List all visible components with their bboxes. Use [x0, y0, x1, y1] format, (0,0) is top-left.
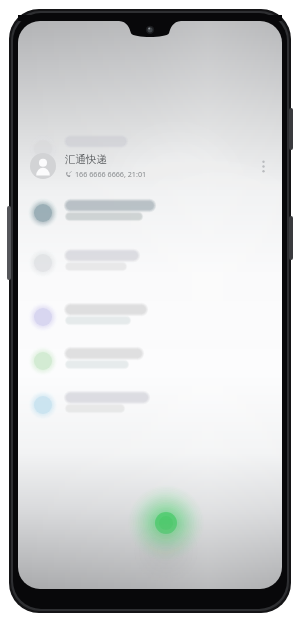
- button[interactable]: Dial pad: [128, 485, 204, 561]
- button[interactable]: [18, 293, 282, 337]
- staticText: 166 6666 6666, 21:01: [75, 169, 147, 179]
- staticText: 汇通快递: [65, 153, 107, 166]
- button[interactable]: [18, 189, 282, 233]
- button[interactable]: [18, 125, 282, 169]
- button[interactable]: [18, 381, 282, 425]
- button[interactable]: [18, 239, 282, 283]
- button[interactable]: 汇通快递: [18, 143, 282, 189]
- button[interactable]: More options: [252, 146, 274, 186]
- button[interactable]: [18, 337, 282, 381]
